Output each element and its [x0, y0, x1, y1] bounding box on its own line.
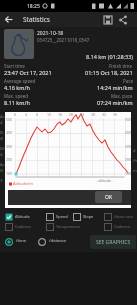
staticText: 4: [0, 120, 4, 125]
staticText: 14:24 min/km [97, 84, 133, 91]
button[interactable]: Slope [73, 213, 84, 222]
staticText: El [0, 130, 4, 135]
staticText: Altitude/m [13, 181, 33, 186]
staticText: SEE GRAPHICS [96, 239, 131, 246]
staticText: 300 [125, 144, 132, 149]
staticText: 2021-10-18 [37, 30, 64, 37]
staticText: 18:25 [27, 3, 40, 10]
button[interactable]: OK [95, 191, 122, 203]
staticText: Max. speed [4, 93, 29, 99]
staticText: 4.16 km/h [4, 84, 30, 91]
button[interactable]: /time [4, 237, 36, 247]
staticText: 8 [36, 112, 39, 117]
staticText: 20 [69, 112, 74, 117]
staticText: 0l [0, 168, 4, 173]
staticText: 100 [6, 171, 13, 176]
staticText: 28 [91, 112, 96, 117]
staticText: Ma [0, 146, 6, 151]
staticText: - altitude - [96, 178, 113, 183]
button[interactable] [102, 14, 114, 26]
staticText: 01:15 Oct 18, 2021 [85, 69, 133, 76]
staticText: 400 [125, 130, 132, 135]
staticText: 0 [14, 112, 17, 117]
staticText: /time [16, 238, 26, 243]
staticText: 200 [6, 157, 13, 162]
staticText: Max. pace [111, 93, 133, 99]
staticText: As [0, 114, 5, 119]
staticText: 32 [102, 112, 107, 117]
button[interactable] [3, 14, 15, 26]
staticText: 4l [0, 136, 4, 141]
staticText: 200 [125, 157, 132, 162]
staticText: 400 [6, 130, 13, 135]
staticText: OK [105, 194, 113, 201]
staticText: 500 [125, 117, 132, 122]
staticText: 4: [0, 152, 4, 157]
staticText: 23:47 Oct 17, 2021 [4, 69, 52, 76]
staticText: 8.11 km/h [4, 99, 30, 106]
staticText: 7: [0, 178, 4, 183]
button[interactable] [4, 29, 34, 59]
staticText: 07:24 min/km [97, 99, 133, 106]
staticText: 12 [47, 112, 52, 117]
button[interactable]: SEE GRAPHICS [90, 235, 136, 249]
staticText: Slope [83, 214, 94, 219]
staticText: Speed [56, 214, 68, 219]
button[interactable]: Cadence [5, 223, 22, 232]
button[interactable]: Altitude [5, 213, 20, 222]
staticText: Pace [123, 78, 133, 84]
staticText: 500 [6, 117, 13, 122]
staticText: Cadence [15, 224, 32, 229]
staticText: Heart rate [114, 214, 134, 219]
staticText: 300 [6, 144, 13, 149]
staticText: Finish time [109, 63, 133, 69]
staticText: Altitude [15, 214, 30, 219]
staticText: 16 [58, 112, 63, 117]
staticText: Average speed [4, 78, 36, 84]
button[interactable]: Speed [46, 213, 58, 222]
staticText: Av [0, 162, 5, 167]
staticText: 36 [113, 112, 118, 117]
staticText: /distance [49, 238, 67, 243]
button[interactable] [117, 14, 129, 26]
button[interactable]: Heart rate [104, 213, 124, 222]
staticText: /h [133, 158, 137, 163]
staticText: 8.14 km (01:28:33) [86, 53, 133, 60]
staticText: Statistics [23, 15, 50, 24]
button[interactable]: Temperature [46, 223, 71, 232]
staticText: Temperature [56, 224, 81, 229]
staticText: 100 [125, 171, 132, 176]
staticText: 4 [25, 112, 28, 117]
staticText: Start time [4, 63, 25, 69]
button[interactable]: Cadence [104, 223, 121, 232]
staticText: 24 [80, 112, 85, 117]
staticText: d [133, 148, 136, 153]
staticText: Cadence [114, 224, 131, 229]
button[interactable]: /distance [37, 237, 75, 247]
staticText: 054725__20211018_0547 [37, 37, 90, 43]
staticText: m [133, 168, 137, 173]
